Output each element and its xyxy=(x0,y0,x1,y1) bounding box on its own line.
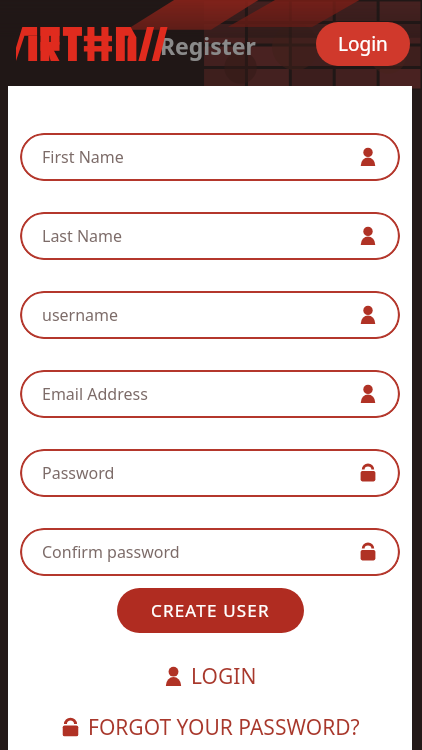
button[interactable]: Login xyxy=(316,22,410,66)
button[interactable]: FORGOT YOUR PASSWORD? xyxy=(50,710,370,745)
button[interactable]: First Name xyxy=(20,133,400,181)
staticText: Register xyxy=(160,30,256,61)
staticText: CREATE USER xyxy=(151,599,270,622)
staticText: LOGIN xyxy=(191,662,257,691)
staticText: Email Address xyxy=(42,383,148,405)
staticText: First Name xyxy=(42,146,124,168)
staticText: Confirm password xyxy=(42,541,180,563)
staticText: Login xyxy=(338,31,388,57)
staticText: Password xyxy=(42,462,115,484)
staticText: username xyxy=(42,304,119,326)
button[interactable]: Last Name xyxy=(20,212,400,260)
button[interactable]: username xyxy=(20,291,400,339)
button[interactable]: LOGIN xyxy=(153,659,267,694)
button[interactable]: Password xyxy=(20,449,400,497)
staticText: FORGOT YOUR PASSWORD? xyxy=(88,713,360,742)
staticText: Last Name xyxy=(42,225,123,247)
button[interactable]: CREATE USER xyxy=(117,588,304,633)
button[interactable]: Confirm password xyxy=(20,528,400,576)
button[interactable]: Email Address xyxy=(20,370,400,418)
